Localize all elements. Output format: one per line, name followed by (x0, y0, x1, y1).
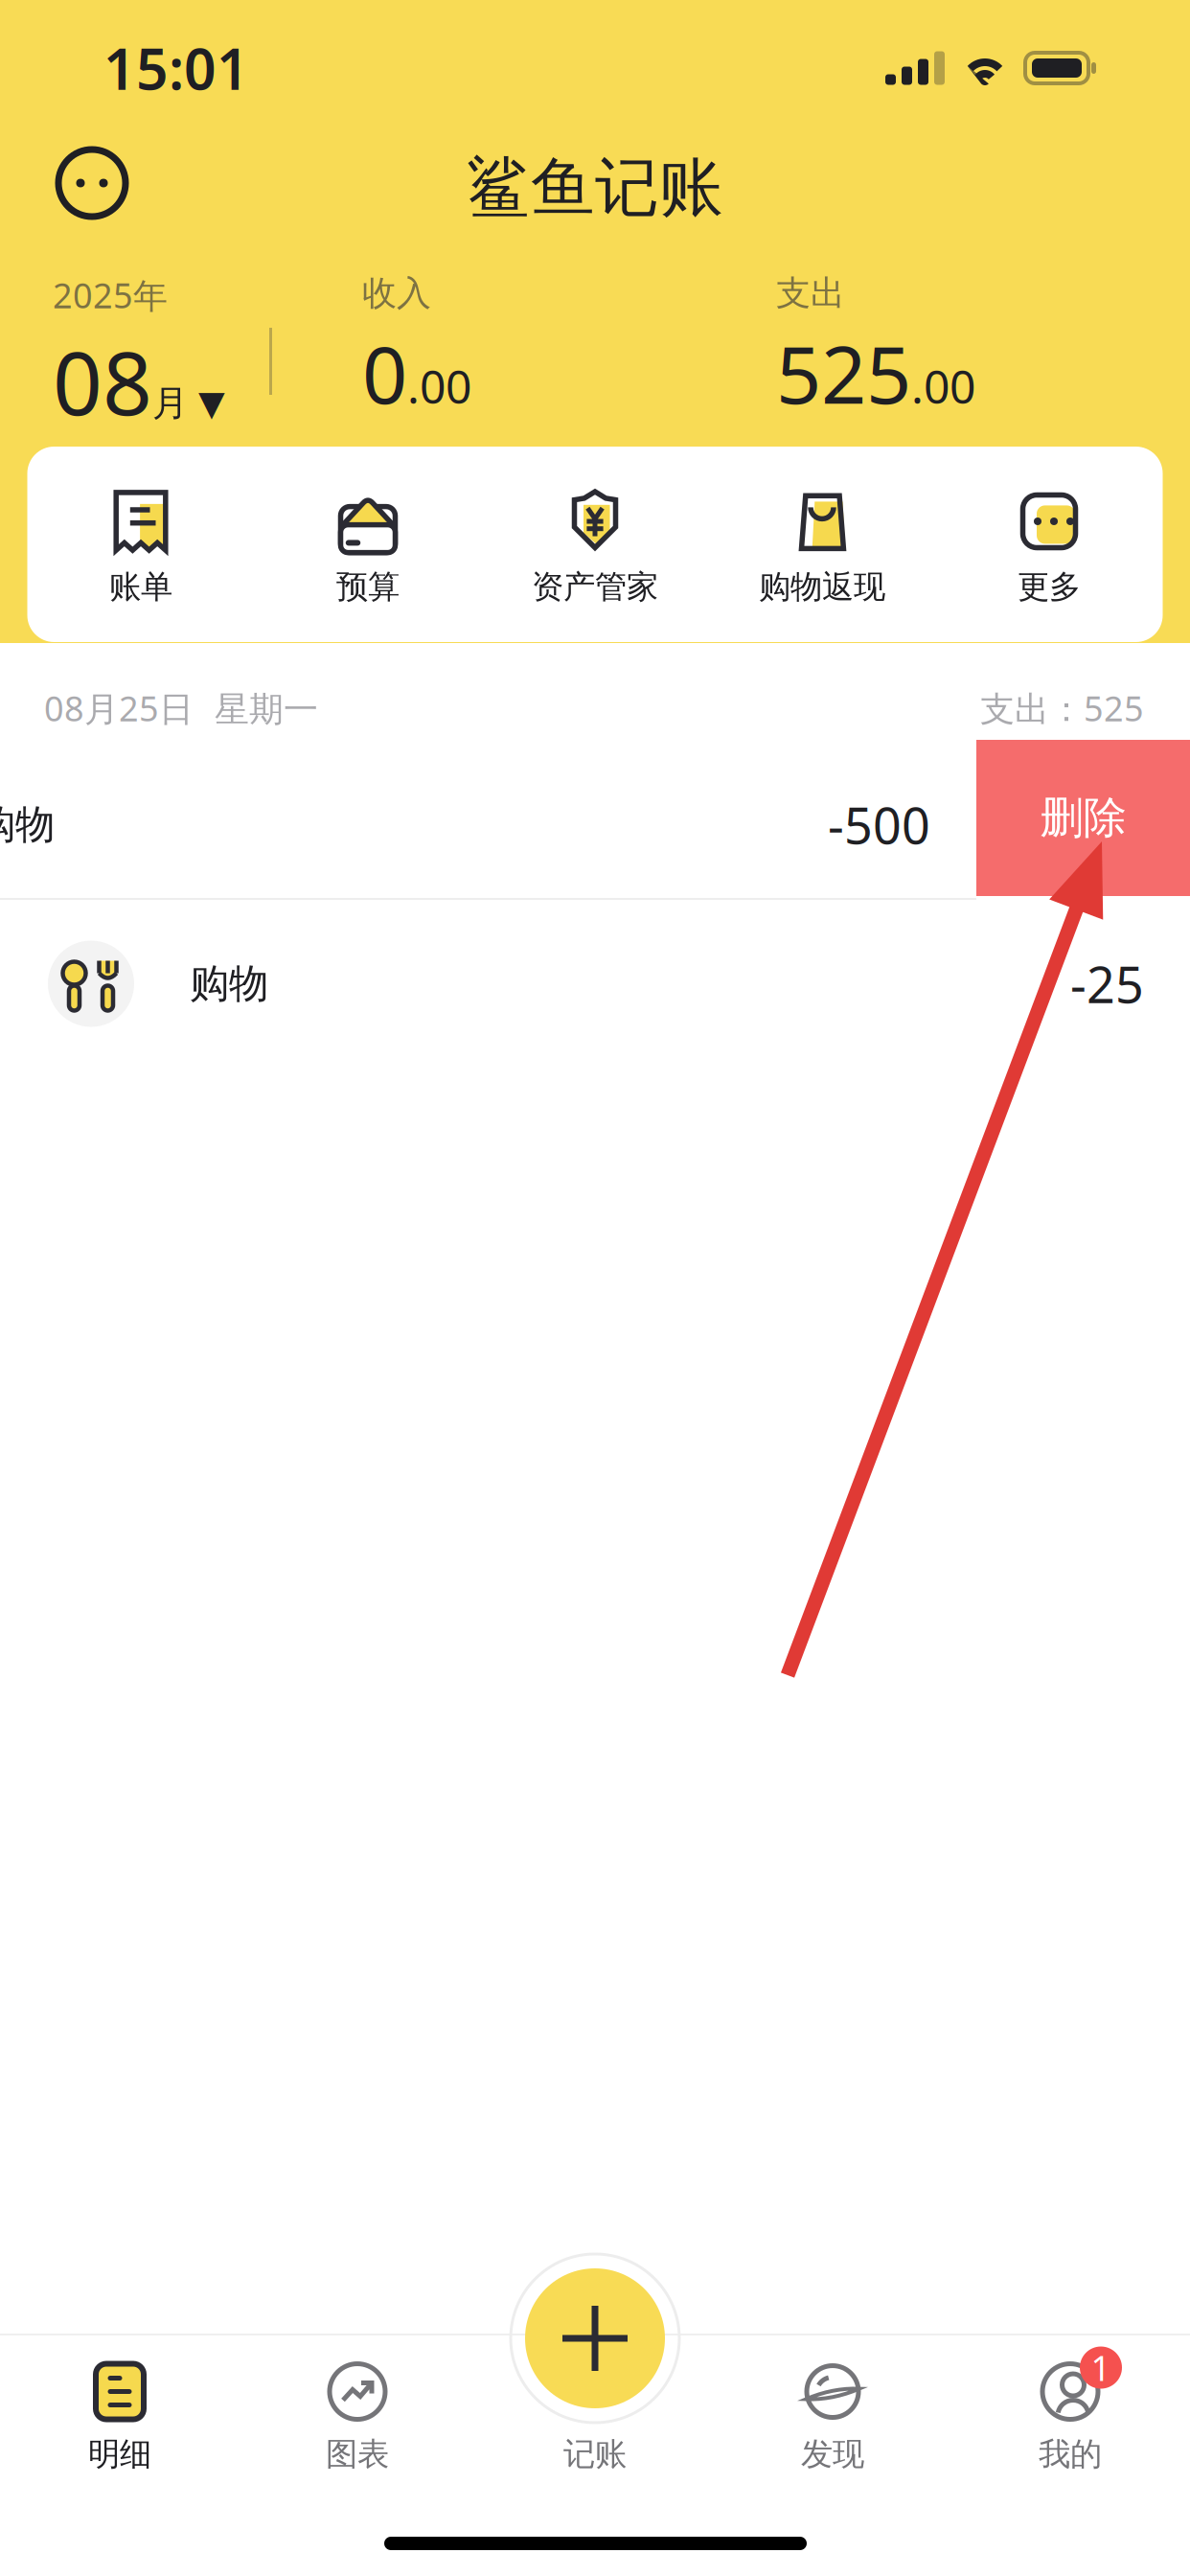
button[interactable]: 预算 (254, 447, 481, 642)
staticText: 明细 (88, 2435, 151, 2474)
button[interactable]: 账户 (56, 147, 128, 219)
staticText: 更多 (1018, 567, 1081, 607)
staticText: 支出 (776, 272, 845, 315)
button[interactable]: 明细 (1, 2349, 239, 2485)
staticText: 购物返现 (759, 567, 885, 607)
staticText: 资产管家 (532, 567, 658, 607)
staticText: 2025年 (53, 272, 168, 318)
staticText: .00 (911, 355, 975, 416)
staticText: 账单 (109, 567, 172, 607)
button[interactable]: 购物 (0, 906, 1190, 1062)
button[interactable]: 购物返现 (709, 447, 936, 642)
staticText: 购物 (190, 959, 268, 1008)
staticText: 记账 (563, 2435, 627, 2474)
staticText: 图表 (326, 2435, 389, 2474)
staticText: 525 (776, 320, 911, 425)
staticText: 15:01 (103, 31, 249, 105)
staticText: 删除 (1040, 791, 1126, 845)
staticText: 月 (152, 381, 188, 425)
button[interactable]: 2025年 (53, 272, 273, 439)
staticText: 预算 (336, 567, 400, 607)
button[interactable]: 图表 (239, 2349, 476, 2485)
button[interactable]: 账单 (27, 447, 254, 642)
button[interactable]: 记账 (476, 2349, 714, 2485)
staticText: 收入 (362, 272, 431, 315)
staticText: -25 (1070, 951, 1144, 1017)
button[interactable]: 删除 (976, 740, 1190, 896)
staticText: 0 (362, 320, 407, 425)
button[interactable]: 发现 (714, 2349, 951, 2485)
staticText: 发现 (801, 2435, 864, 2474)
staticText: 我的 (1039, 2435, 1102, 2474)
staticText: 1 (1091, 2345, 1111, 2390)
staticText: -500 (828, 792, 930, 858)
staticText: 08月25日 星期一 (44, 685, 318, 731)
staticText: ▼ (188, 384, 225, 423)
staticText: 购物 (0, 800, 55, 849)
staticText: 鲨鱼记账 (467, 149, 723, 227)
staticText: 08 (53, 324, 152, 439)
button[interactable]: 记账 (509, 2252, 681, 2425)
button[interactable]: 1 (951, 2349, 1189, 2485)
button[interactable]: 资产管家 (481, 447, 709, 642)
staticText: 支出：525 (980, 685, 1144, 731)
button[interactable]: 更多 (936, 447, 1163, 642)
staticText: .00 (407, 355, 471, 416)
